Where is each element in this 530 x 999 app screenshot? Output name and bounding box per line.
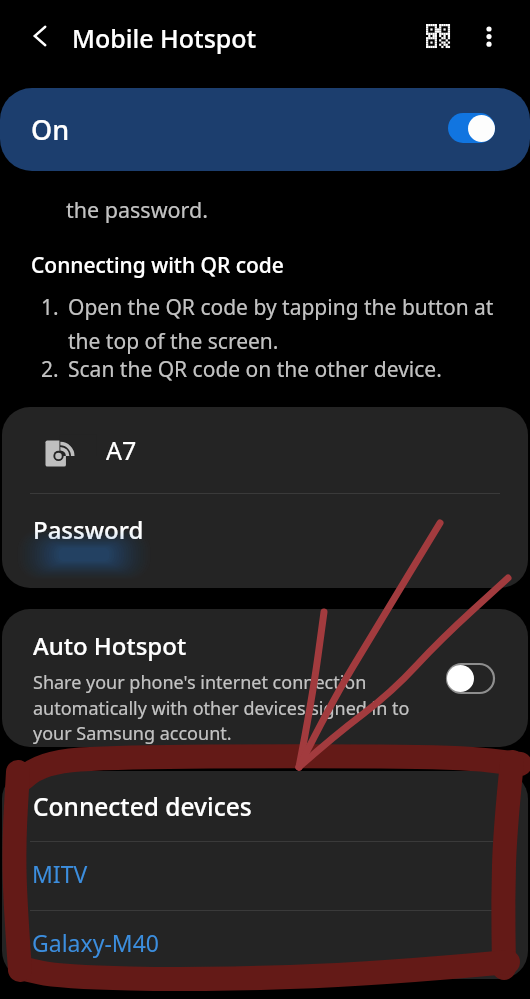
staticText: 1.	[41, 293, 68, 322]
staticText: Connected devices	[33, 790, 252, 823]
staticText: On	[31, 111, 70, 148]
staticText: the password.	[66, 195, 208, 224]
button[interactable]: MITV	[2, 842, 528, 910]
staticText: 2.	[41, 355, 68, 384]
button[interactable]: Password	[2, 494, 528, 588]
staticText: Connecting with QR code	[31, 251, 284, 280]
button[interactable]: Auto Hotspot	[2, 609, 528, 747]
button[interactable]: Show QR code	[414, 12, 462, 60]
staticText: Auto Hotspot	[33, 629, 187, 662]
staticText: Share your phone's internet connection a…	[33, 670, 410, 745]
staticText: Galaxy-M40	[32, 927, 159, 958]
button[interactable]: On	[0, 88, 530, 171]
button[interactable]: More options	[465, 12, 513, 60]
staticText: MITV	[32, 858, 88, 889]
button[interactable]: Galaxy-M40	[2, 911, 528, 979]
button[interactable]: Navigate up	[17, 13, 63, 59]
staticText: Password	[33, 513, 144, 546]
button[interactable]: A7	[2, 407, 528, 493]
staticText: Scan the QR code on the other device.	[68, 355, 442, 384]
staticText: Open the QR code by tapping the button a…	[68, 293, 494, 355]
staticText: A7	[106, 433, 137, 467]
staticText: Mobile Hotspot	[72, 21, 257, 55]
